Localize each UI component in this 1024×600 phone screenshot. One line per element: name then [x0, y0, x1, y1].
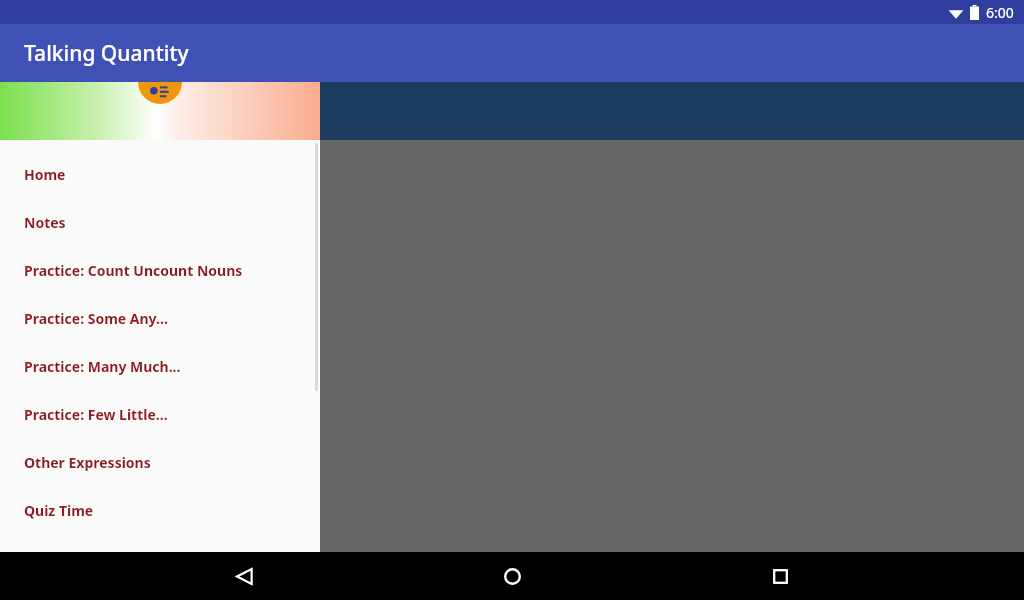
- button[interactable]: Home: [0, 150, 320, 198]
- staticText: 6:00: [986, 3, 1014, 22]
- staticText: Practice: Some Any...: [24, 309, 168, 328]
- button[interactable]: Notes: [0, 198, 320, 246]
- button[interactable]: Quiz Time: [0, 486, 320, 534]
- staticText: Notes: [24, 213, 66, 232]
- button[interactable]: Practice: Some Any...: [0, 294, 320, 342]
- staticText: Other Expressions: [24, 453, 151, 472]
- button[interactable]: Practice: Many Much...: [0, 342, 320, 390]
- staticText: Home: [24, 165, 66, 184]
- button[interactable]: Practice: Few Little...: [0, 390, 320, 438]
- staticText: Talking Quantity: [24, 39, 189, 68]
- button[interactable]: Home: [488, 552, 536, 600]
- button[interactable]: Back: [220, 552, 268, 600]
- staticText: Practice: Many Much...: [24, 357, 181, 376]
- staticText: Practice: Few Little...: [24, 405, 168, 424]
- button[interactable]: Recent apps: [756, 552, 804, 600]
- button[interactable]: Practice: Count Uncount Nouns: [0, 246, 320, 294]
- button[interactable]: Other Expressions: [0, 438, 320, 486]
- staticText: Practice: Count Uncount Nouns: [24, 261, 243, 280]
- staticText: Quiz Time: [24, 501, 94, 520]
